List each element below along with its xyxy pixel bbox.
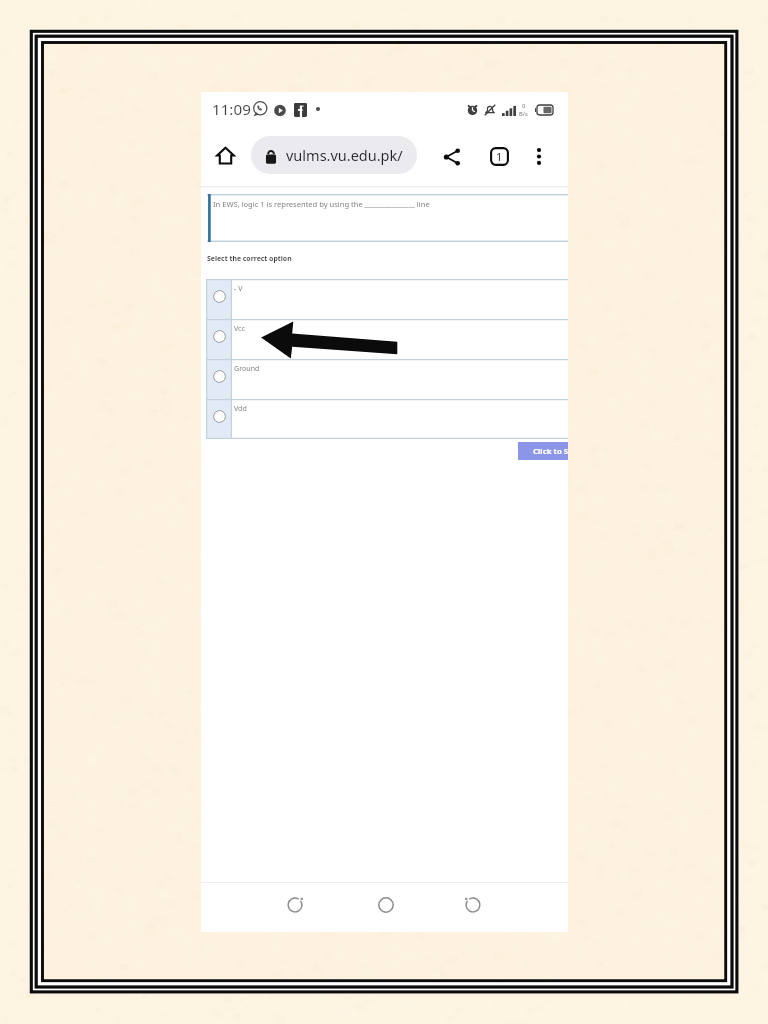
button[interactable]: Ground: [206, 359, 568, 399]
button[interactable]: Vcc: [206, 319, 568, 359]
staticText: Select the correct option: [207, 254, 292, 263]
button[interactable]: Vdd: [206, 399, 568, 439]
staticText: vulms.vu.edu.pk/: [286, 145, 403, 165]
staticText: Vcc: [234, 323, 245, 333]
button[interactable]: Home: [208, 138, 243, 173]
button[interactable]: Share: [434, 139, 470, 175]
staticText: - V: [234, 283, 243, 293]
staticText: Ground: [234, 363, 260, 373]
staticText: 1: [496, 149, 503, 164]
button[interactable]: Recent apps: [456, 888, 490, 922]
staticText: In EWS, logic 1 is represented by using …: [213, 199, 430, 209]
button[interactable]: Click to Scroll: [518, 442, 568, 460]
button[interactable]: Home: [369, 888, 403, 922]
staticText: Vdd: [234, 403, 247, 413]
staticText: 0: [522, 102, 526, 110]
button[interactable]: More options: [522, 139, 556, 173]
button[interactable]: Tabs: [481, 138, 517, 174]
button[interactable]: - V: [206, 279, 568, 319]
staticText: B/s: [519, 110, 528, 118]
staticText: 11:09: [212, 99, 251, 120]
button[interactable]: Back: [278, 888, 312, 922]
staticText: Click to Scroll: [533, 446, 568, 457]
button[interactable]: vulms.vu.edu.pk/: [251, 136, 417, 174]
